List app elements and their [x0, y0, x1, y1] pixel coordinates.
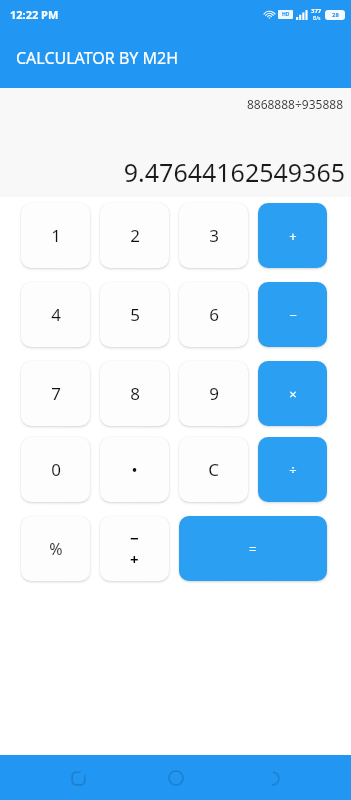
staticText: 6	[209, 303, 219, 326]
button[interactable]: Recent apps	[58, 758, 98, 798]
staticText: %	[49, 538, 63, 560]
staticText: +	[130, 549, 139, 569]
button[interactable]: 9	[179, 361, 248, 426]
button[interactable]: 0	[21, 437, 90, 502]
button[interactable]: −	[258, 282, 327, 347]
button[interactable]: 3	[179, 203, 248, 268]
staticText: 3	[209, 224, 219, 247]
staticText: 8868888÷935888	[0, 96, 343, 112]
staticText: ×	[289, 385, 297, 403]
button[interactable]: C	[179, 437, 248, 502]
staticText: +	[289, 227, 297, 245]
button[interactable]: •	[100, 437, 169, 502]
staticText: 0	[51, 458, 61, 481]
staticText: B/s	[313, 15, 321, 22]
staticText: 377	[311, 7, 322, 15]
button[interactable]: 6	[179, 282, 248, 347]
staticText: HD	[282, 11, 290, 18]
staticText: C	[208, 458, 219, 481]
staticText: −	[289, 306, 297, 324]
staticText: =	[249, 540, 257, 558]
button[interactable]: +	[258, 203, 327, 268]
button[interactable]: 7	[21, 361, 90, 426]
button[interactable]: 4	[21, 282, 90, 347]
staticText: 1	[51, 224, 61, 247]
staticText: 4	[51, 303, 61, 326]
staticText: 9	[209, 382, 219, 405]
staticText: •	[131, 459, 138, 481]
button[interactable]: 1	[21, 203, 90, 268]
staticText: 7	[51, 382, 61, 405]
button[interactable]: 5	[100, 282, 169, 347]
button[interactable]: 2	[100, 203, 169, 268]
staticText: 2	[130, 224, 140, 247]
staticText: 9.47644162549365	[0, 155, 345, 189]
button[interactable]: Back	[253, 758, 293, 798]
button[interactable]: %	[21, 516, 90, 581]
staticText: ÷	[289, 461, 297, 479]
button[interactable]: CALCULATOR BY M2H	[0, 28, 351, 88]
button[interactable]: ×	[258, 361, 327, 426]
button[interactable]: −	[100, 516, 169, 581]
button[interactable]: 8	[100, 361, 169, 426]
staticText: 8	[130, 382, 140, 405]
staticText: 5	[130, 303, 140, 326]
button[interactable]: Home	[156, 758, 196, 798]
staticText: CALCULATOR BY M2H	[16, 47, 179, 69]
button[interactable]: ÷	[258, 437, 327, 502]
staticText: −	[130, 528, 139, 548]
staticText: 12:22 PM	[10, 7, 59, 22]
staticText: 28	[332, 11, 339, 19]
button[interactable]: =	[179, 516, 327, 581]
